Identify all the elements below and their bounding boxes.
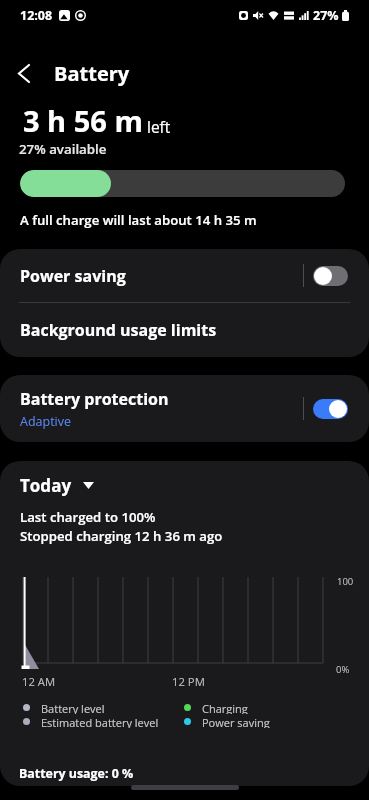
staticText: Battery xyxy=(54,60,130,87)
button[interactable]: Back xyxy=(0,46,48,100)
staticText: Battery protection xyxy=(20,388,169,410)
staticText: 100 xyxy=(337,575,354,588)
button[interactable]: Toggle off xyxy=(313,266,348,286)
staticText: Power saving xyxy=(20,265,126,287)
staticText: Battery usage: 0 % xyxy=(19,765,134,782)
staticText: Battery level xyxy=(41,701,105,714)
staticText: A full charge will last about 14 h 35 m xyxy=(20,211,257,229)
staticText: Today xyxy=(20,474,72,497)
staticText: left xyxy=(147,116,171,137)
staticText: Adaptive xyxy=(20,413,72,430)
button[interactable]: Battery protection xyxy=(0,375,369,442)
staticText: Estimated battery level xyxy=(41,715,159,728)
staticText: Power saving xyxy=(202,715,270,728)
staticText: 12 PM xyxy=(172,674,205,689)
staticText: 0% xyxy=(336,663,350,676)
staticText: Last charged to 100% xyxy=(20,508,156,526)
button[interactable]: Toggle on xyxy=(313,399,348,419)
staticText: 12 AM xyxy=(22,674,56,689)
staticText: 3 h 56 m xyxy=(23,101,143,140)
button[interactable]: Today xyxy=(20,474,94,497)
staticText: Stopped charging 12 h 36 m ago xyxy=(20,527,223,545)
staticText: 27% available xyxy=(19,140,107,158)
staticText: Background usage limits xyxy=(20,319,217,341)
button[interactable]: Power saving xyxy=(0,249,369,302)
staticText: Charging xyxy=(202,701,248,714)
button[interactable]: Background usage limits xyxy=(0,303,369,357)
staticText: 12:08 xyxy=(20,7,53,24)
staticText: 27% xyxy=(313,7,339,24)
